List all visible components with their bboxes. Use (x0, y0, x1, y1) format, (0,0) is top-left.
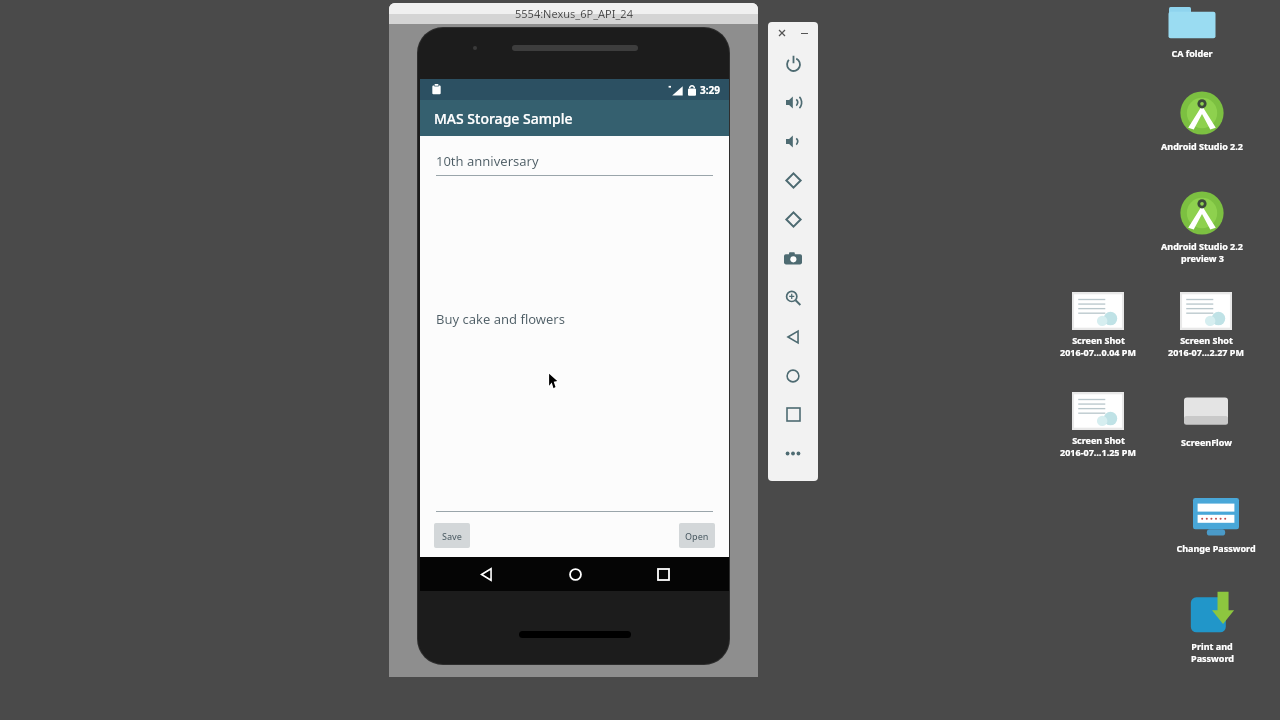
staticText: 2016-07…2.27 PM (1168, 346, 1244, 358)
button[interactable]: Back (768, 317, 818, 356)
button[interactable]: Change Password (1168, 498, 1264, 554)
staticText: 5554:Nexus_6P_API_24 (515, 6, 633, 21)
staticText: CA folder (1171, 47, 1213, 59)
staticText: Screen Shot (1180, 334, 1233, 346)
button[interactable]: Android Studio 2.2 (1154, 190, 1250, 264)
staticText: Android Studio 2.2 (1161, 240, 1243, 252)
button[interactable]: Recent apps (641, 557, 685, 591)
staticText: Buy cake and flowers (436, 310, 565, 328)
button[interactable]: Screenshot (768, 239, 818, 278)
button[interactable]: Volume up (768, 83, 818, 122)
staticText: Screen Shot (1072, 334, 1125, 346)
button[interactable]: Overview (768, 395, 818, 434)
staticText: Android Studio 2.2 (1161, 140, 1243, 152)
staticText: 3:29 (700, 83, 720, 97)
staticText: Print and (1191, 640, 1233, 652)
staticText: Save (442, 530, 463, 542)
button[interactable]: Print and (1164, 590, 1260, 664)
button[interactable]: 5554:Nexus_6P_API_24 (389, 3, 758, 24)
button[interactable]: Back (464, 557, 508, 591)
button[interactable]: Volume down (768, 122, 818, 161)
button[interactable]: Minimize (797, 26, 811, 40)
staticText: 2016-07…0.04 PM (1060, 346, 1136, 358)
staticText: Open (685, 530, 709, 542)
button[interactable]: Close (775, 26, 789, 40)
staticText: Screen Shot (1072, 434, 1125, 446)
button[interactable]: Screen Shot (1158, 292, 1254, 358)
staticText: ScreenFlow (1181, 436, 1232, 448)
button[interactable]: Buy cake and flowers (436, 210, 713, 513)
button[interactable]: 10th anniversary (436, 152, 713, 176)
staticText: Password (1191, 652, 1234, 664)
button[interactable]: Screen Shot (1050, 392, 1146, 458)
button[interactable]: Android Studio 2.2 (1154, 90, 1250, 152)
button[interactable]: Open (679, 523, 715, 548)
button[interactable]: Save (434, 523, 470, 548)
button[interactable]: ScreenFlow (1158, 392, 1254, 448)
staticText: 10th anniversary (436, 152, 539, 170)
button[interactable]: Home (553, 557, 597, 591)
button[interactable]: More (768, 434, 818, 473)
button[interactable]: Home (768, 356, 818, 395)
button[interactable]: Rotate right (768, 200, 818, 239)
button[interactable]: Power (768, 44, 818, 83)
staticText: preview 3 (1181, 252, 1224, 264)
staticText: 2016-07…1.25 PM (1060, 446, 1136, 458)
button[interactable]: Zoom (768, 278, 818, 317)
staticText: MAS Storage Sample (434, 109, 573, 128)
staticText: Change Password (1176, 542, 1256, 554)
button[interactable]: CA folder (1144, 3, 1240, 59)
button[interactable]: Rotate left (768, 161, 818, 200)
button[interactable]: Screen Shot (1050, 292, 1146, 358)
